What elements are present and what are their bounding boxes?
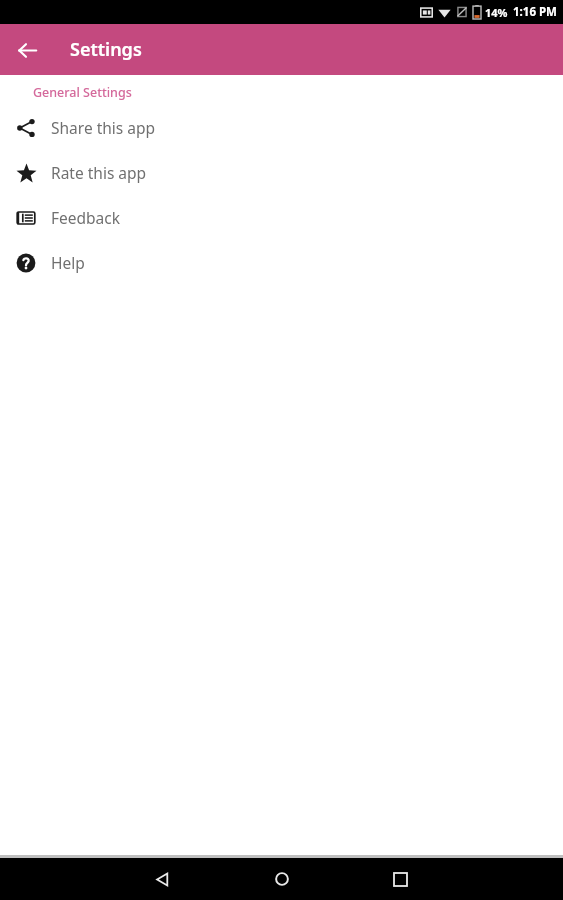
staticText: General Settings [33,84,132,101]
staticText: Settings [70,37,142,62]
button[interactable]: Back [9,32,45,68]
staticText: 14% [485,5,508,20]
button[interactable]: Help [0,240,563,285]
staticText: 1:16 PM [513,4,557,20]
button[interactable]: Back [142,859,182,899]
button[interactable]: Rate this app [0,150,563,195]
button[interactable]: Home [262,859,302,899]
button[interactable]: Share this app [0,105,563,150]
staticText: Help [51,252,85,273]
button[interactable]: Recent apps [380,859,420,899]
button[interactable]: Feedback [0,195,563,240]
staticText: Feedback [51,207,121,228]
staticText: Rate this app [51,162,147,183]
staticText: Share this app [51,117,156,138]
